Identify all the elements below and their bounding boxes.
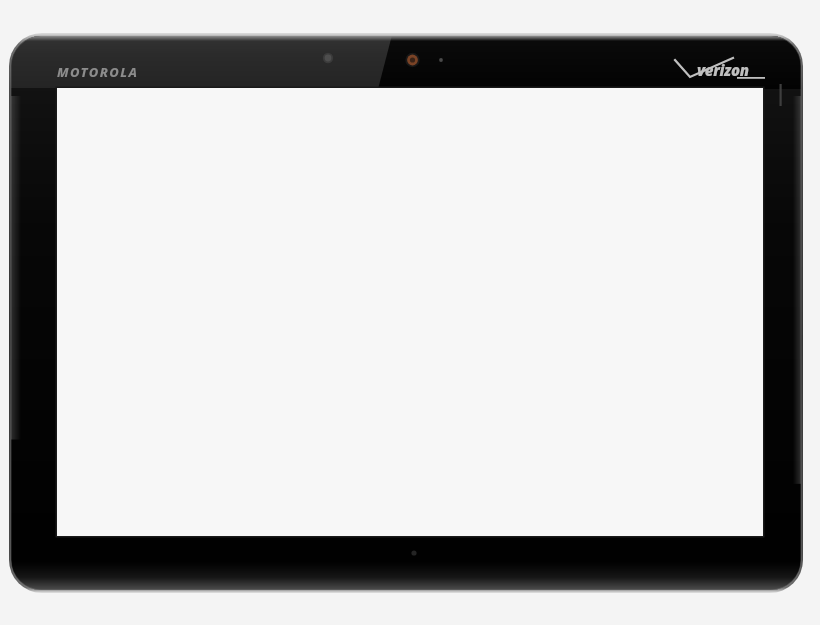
button[interactable]: Motorola [57, 62, 167, 82]
button[interactable]: Motorola Xoom tablet with Verizon brandi… [0, 0, 820, 625]
staticText: MOTOROLA [57, 63, 139, 81]
staticText: verizon [697, 60, 749, 80]
button[interactable]: Verizon [697, 60, 767, 80]
